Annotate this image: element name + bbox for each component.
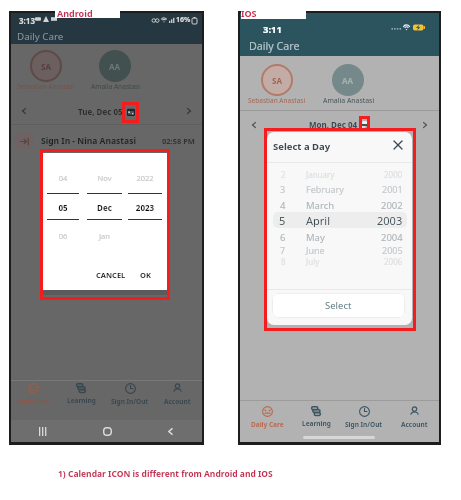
staticText: Daily Care	[17, 30, 64, 43]
button[interactable]: CANCEL	[92, 268, 130, 282]
staticText: 2005	[382, 244, 403, 256]
staticText: OK	[140, 270, 151, 280]
staticText: Select a Day	[273, 140, 331, 153]
staticText: Tue, Dec 05	[78, 106, 123, 117]
staticText: July	[306, 256, 320, 267]
staticText: Amalia Anastasi	[91, 82, 140, 91]
button[interactable]: Daily Care	[10, 382, 56, 407]
staticText: March	[306, 199, 335, 212]
staticText: 2001	[382, 183, 403, 195]
staticText: Daily Care	[17, 397, 50, 406]
staticText: 2003	[377, 213, 403, 227]
button[interactable]: Sign In/Out	[341, 405, 387, 430]
button[interactable]: Sign In - Nina Anastasi	[11, 129, 202, 152]
button[interactable]: Previous day	[16, 103, 32, 119]
button[interactable]: Pick date	[362, 121, 370, 129]
staticText: 5	[279, 213, 286, 227]
staticText: Daily Care	[251, 420, 284, 429]
staticText: Learning	[67, 396, 96, 405]
button[interactable]: Daily Care	[244, 405, 290, 430]
staticText: AA	[342, 75, 354, 86]
staticText: Sebastian Anastasi	[17, 82, 75, 91]
staticText: 1) Calendar ICON is different from Andro…	[58, 468, 273, 480]
staticText: 8	[281, 256, 286, 267]
button[interactable]: Sign In/Out	[107, 382, 153, 407]
staticText: 2022	[128, 173, 162, 183]
staticText: Nov	[87, 173, 122, 183]
staticText: Sign In/Out	[111, 397, 149, 406]
staticText: April	[306, 213, 331, 227]
staticText: 04	[47, 173, 79, 183]
staticText: 05	[47, 202, 79, 213]
staticText: 7	[280, 244, 286, 256]
staticText: 6	[280, 231, 286, 244]
staticText: Sign In/Out	[345, 420, 383, 429]
staticText: Select	[325, 299, 352, 312]
staticText: 2004	[381, 231, 403, 244]
staticText: 3:13	[19, 15, 35, 26]
staticText: SA	[272, 75, 282, 86]
button[interactable]: Recents	[34, 422, 52, 440]
staticText: 2	[281, 169, 286, 180]
staticText: Account	[401, 420, 428, 429]
staticText: Dec	[87, 202, 122, 213]
staticText: 2002	[381, 199, 403, 212]
button[interactable]: Select	[272, 293, 405, 318]
staticText: CANCEL	[96, 270, 126, 280]
staticText: Account	[164, 397, 191, 406]
button[interactable]: Next day	[181, 103, 197, 119]
staticText: 2000	[384, 169, 403, 180]
button[interactable]: Learning	[58, 382, 104, 406]
button[interactable]: Account	[391, 405, 437, 430]
button[interactable]: Pick date	[127, 108, 135, 116]
button[interactable]: OK	[136, 268, 155, 282]
staticText: February	[306, 183, 344, 195]
staticText: May	[306, 231, 325, 244]
staticText: Sign In - Nina Anastasi	[41, 135, 136, 147]
staticText: Amalia Anastasi	[323, 96, 375, 105]
staticText: Daily Care	[249, 39, 300, 54]
staticText: 02:58 PM	[162, 136, 195, 146]
staticText: IOS	[241, 7, 257, 19]
button[interactable]: Home	[98, 422, 116, 440]
button[interactable]: Close	[389, 136, 406, 153]
staticText: Learning	[302, 419, 331, 428]
staticText: 2006	[384, 256, 403, 267]
staticText: 2023	[128, 202, 162, 213]
staticText: SA	[41, 61, 51, 72]
staticText: Mon, Dec 04	[309, 119, 358, 130]
button[interactable]: Learning	[293, 405, 339, 429]
button[interactable]: Next day	[417, 117, 433, 133]
staticText: June	[306, 244, 325, 256]
staticText: Jan	[87, 231, 122, 241]
staticText: Android	[57, 7, 93, 19]
button[interactable]: Previous day	[246, 117, 262, 133]
staticText: January	[306, 169, 335, 180]
staticText: 16%	[176, 15, 191, 25]
staticText: 4	[280, 199, 286, 212]
staticText: AA	[109, 61, 121, 72]
button[interactable]: Account	[154, 382, 200, 407]
staticText: 06	[47, 231, 79, 241]
button[interactable]: Back	[161, 422, 179, 440]
staticText: 3:11	[263, 23, 282, 36]
staticText: Sebastian Anastasi	[248, 96, 306, 105]
staticText: 3	[280, 183, 286, 195]
